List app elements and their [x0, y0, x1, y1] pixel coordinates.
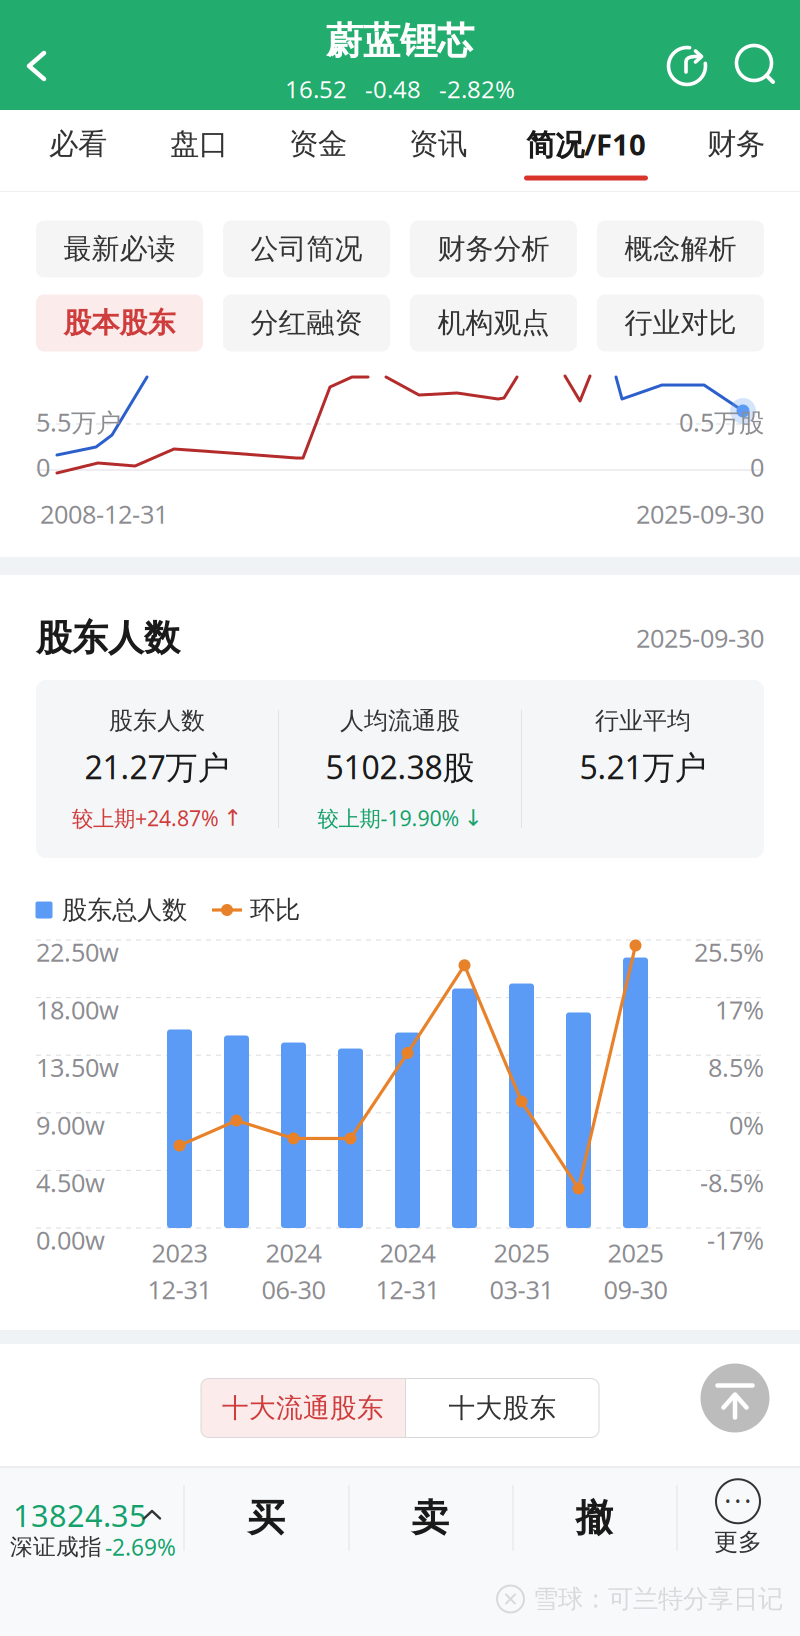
- staticText: 深证成指: [10, 1533, 102, 1561]
- staticText: 5102.38股: [325, 745, 474, 788]
- staticText: 机构观点: [437, 306, 549, 340]
- button[interactable]: 卖: [350, 1471, 510, 1565]
- button[interactable]: 机构观点: [410, 294, 577, 351]
- staticText: 9.00w: [36, 1108, 105, 1142]
- staticText: 公司简况: [250, 232, 362, 266]
- staticText: 2025-09-30: [636, 621, 764, 655]
- staticText: 0%: [729, 1108, 764, 1142]
- staticText: 撤: [575, 1495, 612, 1541]
- staticText: 5.21万户: [579, 745, 706, 788]
- button[interactable]: • • •: [683, 1471, 793, 1565]
- staticText: 13.50w: [36, 1050, 119, 1084]
- button[interactable]: 买: [186, 1471, 346, 1565]
- staticText: -2.69%: [105, 1532, 176, 1562]
- staticText: 财务: [707, 126, 765, 162]
- staticText: 股东人数: [109, 706, 205, 735]
- staticText: 0.00w: [36, 1223, 105, 1257]
- staticText: 雪球：可兰特分享日记: [533, 1583, 783, 1614]
- button[interactable]: 盘口: [111, 110, 287, 192]
- staticText: 分红融资: [250, 306, 362, 340]
- staticText: ↓: [463, 805, 482, 831]
- button[interactable]: 十大股东: [406, 1378, 599, 1437]
- staticText: 行业平均: [595, 706, 691, 735]
- staticText: 人均流通股: [340, 706, 460, 735]
- staticText: 财务分析: [437, 232, 549, 266]
- button[interactable]: 资金: [230, 110, 406, 192]
- staticText: 2008-12-31: [40, 497, 168, 531]
- staticText: 22.50w: [36, 935, 119, 969]
- staticText: 卖: [411, 1495, 448, 1541]
- staticText: 4.50w: [36, 1166, 105, 1199]
- staticText: 09-30: [603, 1272, 667, 1306]
- staticText: 更多: [714, 1527, 762, 1557]
- button[interactable]: 最新必读: [36, 220, 203, 277]
- staticText: 18.00w: [36, 993, 119, 1026]
- staticText: • • •: [725, 1491, 751, 1511]
- button[interactable]: 分红融资: [223, 294, 390, 351]
- staticText: -17%: [707, 1223, 764, 1257]
- staticText: 最新必读: [63, 232, 175, 266]
- staticText: 0: [750, 450, 764, 484]
- button[interactable]: Search: [724, 33, 790, 99]
- staticText: 12-31: [147, 1272, 211, 1306]
- button[interactable]: 深证成指: [0, 1476, 196, 1570]
- button[interactable]: 资讯: [350, 110, 526, 192]
- staticText: 十大股东: [448, 1392, 556, 1424]
- staticText: 8.5%: [708, 1050, 764, 1084]
- staticText: 2025: [607, 1236, 663, 1269]
- staticText: 必看: [49, 126, 107, 162]
- staticText: 5.5万户: [36, 405, 121, 439]
- button[interactable]: 十大流通股东: [201, 1378, 405, 1437]
- button[interactable]: 财务: [648, 110, 800, 192]
- staticText: 2025: [493, 1236, 549, 1269]
- staticText: 十大流通股东: [222, 1392, 384, 1424]
- staticText: 较上期-19.90%: [317, 804, 459, 832]
- staticText: 概念解析: [624, 232, 736, 266]
- staticText: 06-30: [261, 1272, 325, 1306]
- staticText: 0: [36, 450, 50, 484]
- button[interactable]: 财务分析: [410, 220, 577, 277]
- button[interactable]: 撤: [514, 1471, 674, 1565]
- button[interactable]: Scroll to top: [700, 1363, 769, 1432]
- staticText: 较上期+24.87%: [72, 804, 219, 832]
- staticText: 2024: [265, 1236, 321, 1269]
- staticText: 21.27万户: [84, 745, 229, 788]
- staticText: 行业对比: [624, 306, 736, 340]
- staticText: 股东总人数: [62, 894, 187, 925]
- staticText: ↑: [223, 805, 242, 831]
- staticText: 买: [247, 1495, 284, 1541]
- button[interactable]: 简况/F10: [498, 110, 674, 192]
- staticText: 16.52 -0.48 -2.82%: [285, 73, 515, 105]
- staticText: 13824.35: [13, 1495, 147, 1535]
- staticText: -8.5%: [700, 1166, 764, 1199]
- staticText: 2023: [151, 1236, 207, 1269]
- button[interactable]: 股本股东: [36, 294, 203, 351]
- button[interactable]: 行业对比: [597, 294, 764, 351]
- button[interactable]: 概念解析: [597, 220, 764, 277]
- button[interactable]: Share: [654, 33, 720, 99]
- staticText: 2025-09-30: [636, 497, 764, 531]
- staticText: 2024: [379, 1236, 435, 1269]
- staticText: 环比: [250, 894, 300, 925]
- staticText: 股本股东: [63, 306, 175, 340]
- button[interactable]: 必看: [0, 110, 166, 192]
- staticText: 资金: [289, 126, 347, 162]
- button[interactable]: Back: [6, 22, 82, 110]
- staticText: 蔚蓝锂芯: [326, 18, 474, 64]
- staticText: 17%: [715, 993, 764, 1026]
- staticText: 盘口: [170, 126, 228, 162]
- staticText: 资讯: [409, 126, 467, 162]
- staticText: 股东人数: [36, 616, 180, 660]
- button[interactable]: 公司简况: [223, 220, 390, 277]
- staticText: 25.5%: [694, 935, 764, 969]
- staticText: 0.5万股: [679, 405, 764, 439]
- staticText: 03-31: [489, 1272, 553, 1306]
- staticText: 12-31: [375, 1272, 439, 1306]
- staticText: 简况/F10: [526, 124, 646, 163]
